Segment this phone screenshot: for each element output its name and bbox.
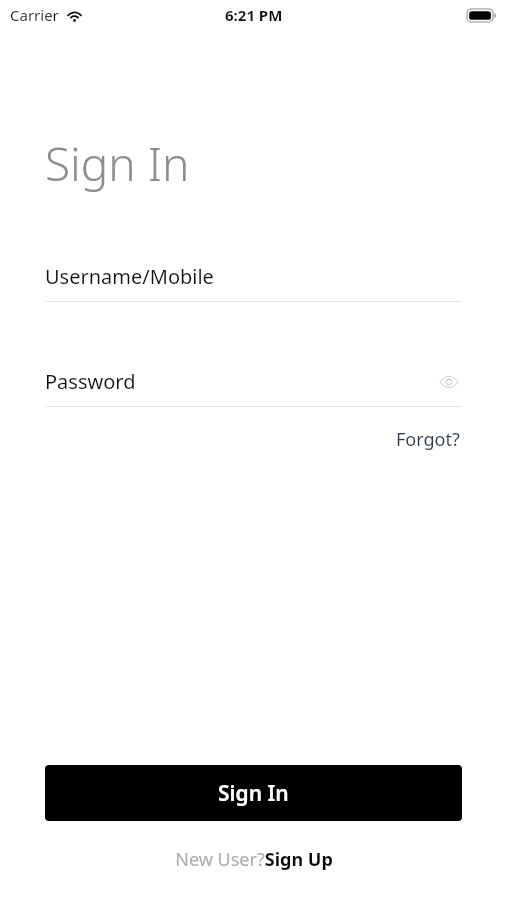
staticText: Forgot? xyxy=(396,427,460,452)
staticText: Password xyxy=(45,368,436,395)
button[interactable]: Forgot? xyxy=(394,423,462,456)
button[interactable]: New User?Sign Up xyxy=(171,845,337,874)
staticText: Username/Mobile xyxy=(45,263,462,290)
staticText: 6:21 PM xyxy=(225,5,283,25)
button[interactable]: Sign In xyxy=(45,765,462,821)
staticText: New User?Sign Up xyxy=(175,847,333,872)
button[interactable]: Show password xyxy=(436,369,462,395)
button[interactable]: Password xyxy=(45,368,462,395)
staticText: Sign In xyxy=(218,779,289,808)
staticText: Sign In xyxy=(45,132,190,195)
staticText: Carrier xyxy=(10,5,59,25)
button[interactable]: Username/Mobile xyxy=(45,263,462,290)
